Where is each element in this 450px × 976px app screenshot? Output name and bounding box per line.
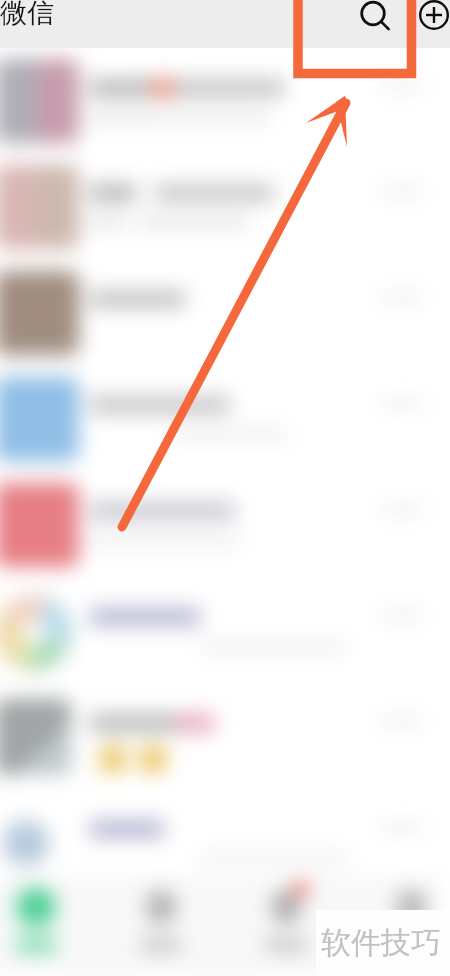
button[interactable] xyxy=(0,684,441,790)
button[interactable] xyxy=(0,884,81,976)
button[interactable] xyxy=(366,884,450,976)
button[interactable] xyxy=(116,884,206,976)
button[interactable] xyxy=(0,790,441,896)
button[interactable]: Add xyxy=(412,0,450,37)
button[interactable] xyxy=(0,578,441,684)
staticText: 软件技巧 xyxy=(321,924,441,962)
button[interactable] xyxy=(0,48,441,154)
button[interactable] xyxy=(0,260,441,366)
button[interactable] xyxy=(0,472,441,578)
button[interactable] xyxy=(241,884,331,976)
button[interactable] xyxy=(0,154,441,260)
staticText: 微信 xyxy=(0,0,54,30)
button[interactable]: Search xyxy=(351,0,395,36)
button[interactable] xyxy=(0,366,441,472)
